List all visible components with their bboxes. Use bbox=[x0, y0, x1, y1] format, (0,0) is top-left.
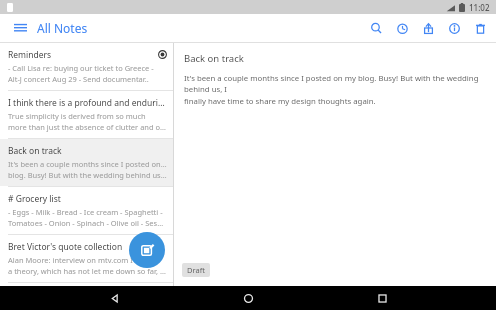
button[interactable]: Search bbox=[363, 14, 389, 42]
staticText: I think there is a profound and enduring… bbox=[8, 97, 167, 109]
button[interactable]: Share bbox=[415, 14, 441, 42]
staticText: It's been a couple months since I posted… bbox=[8, 159, 167, 169]
button[interactable]: New note bbox=[129, 232, 165, 268]
staticText: Draft bbox=[187, 265, 205, 275]
button[interactable]: Recent apps bbox=[362, 286, 402, 310]
staticText: - Eggs - Milk - Bread - Ice cream - Spag… bbox=[8, 207, 163, 217]
button[interactable]: Reminders bbox=[0, 43, 173, 90]
staticText: All Notes bbox=[37, 20, 88, 36]
staticText: Alt-J concert Aug 29 - Send documentar.. bbox=[8, 74, 149, 84]
button[interactable]: Back bbox=[94, 286, 134, 310]
button[interactable]: # Grocery list bbox=[0, 187, 173, 234]
staticText: Reminders bbox=[8, 49, 52, 61]
staticText: 11:02 bbox=[469, 2, 490, 13]
staticText: # Grocery list bbox=[8, 193, 61, 205]
staticText: - Call Lisa re: buying our ticket to Gre… bbox=[8, 63, 154, 73]
staticText: Back on track bbox=[184, 52, 244, 65]
staticText: Bret Victor's quote collection bbox=[8, 241, 123, 253]
staticText: finally have time to share my design tho… bbox=[184, 96, 376, 107]
staticText: Back on track bbox=[8, 145, 62, 157]
staticText: a theory, which has not let me down so f… bbox=[8, 266, 167, 276]
staticText: Tomatoes - Onion - Spinach - Olive oil -… bbox=[8, 218, 167, 228]
staticText: Alan Moore: interview on mtv.com I have bbox=[8, 255, 152, 265]
button[interactable]: Open navigation drawer bbox=[10, 19, 31, 37]
button[interactable]: Version history bbox=[389, 14, 415, 42]
button[interactable]: I think there is a profound and enduring… bbox=[0, 91, 173, 138]
staticText: blog. Busy! But with the wedding behind … bbox=[8, 170, 167, 180]
button[interactable]: Back on track bbox=[0, 139, 173, 186]
button[interactable]: Draft bbox=[182, 263, 210, 277]
staticText: True simplicity is derived from so much bbox=[8, 111, 146, 121]
button[interactable]: Home bbox=[228, 286, 268, 310]
button[interactable]: Delete bbox=[467, 14, 493, 42]
button[interactable]: All Notes bbox=[37, 20, 88, 36]
button[interactable]: Bret Victor's quote collection bbox=[0, 235, 173, 282]
staticText: more than just the absence of clutter an… bbox=[8, 122, 167, 132]
button[interactable]: Note info bbox=[441, 14, 467, 42]
staticText: It's been a couple months since I posted… bbox=[184, 73, 486, 95]
